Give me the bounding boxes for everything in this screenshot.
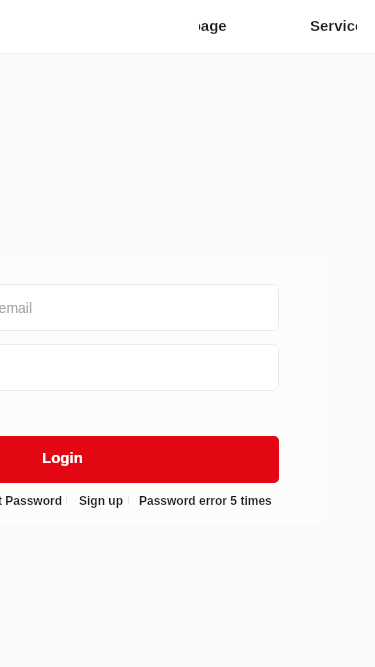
button[interactable]: Login bbox=[0, 436, 279, 483]
button[interactable]: Homepage bbox=[199, 7, 227, 39]
button[interactable]: Please enter your email bbox=[0, 284, 279, 331]
button[interactable]: Service bbox=[302, 7, 365, 44]
staticText: Password error 5 times bbox=[139, 494, 272, 507]
button[interactable]: Sign up bbox=[79, 494, 123, 507]
button[interactable]: Password error 5 times bbox=[139, 494, 272, 507]
staticText: Forgot Password bbox=[0, 494, 63, 507]
staticText: Please enter your email bbox=[0, 300, 33, 316]
staticText: Homepage bbox=[199, 17, 227, 34]
button[interactable]: Password bbox=[0, 344, 279, 391]
staticText: Service bbox=[310, 17, 357, 34]
button[interactable]: Forgot Password bbox=[0, 494, 63, 507]
staticText: Login bbox=[42, 449, 83, 466]
staticText: Sign up bbox=[79, 494, 123, 507]
